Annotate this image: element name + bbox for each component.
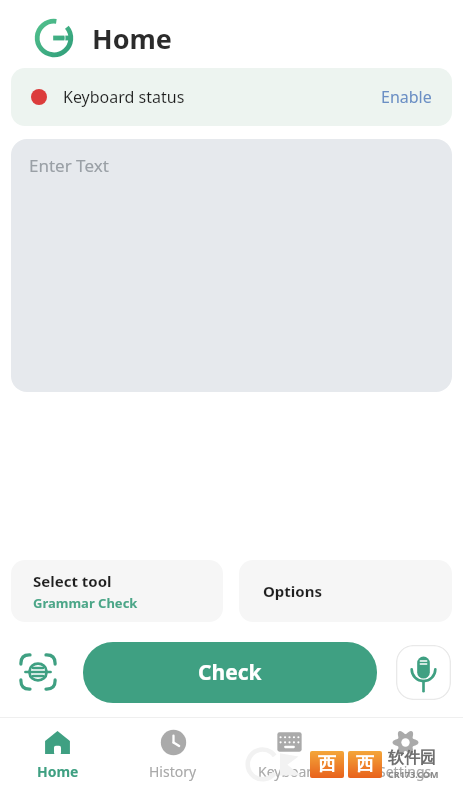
staticText: Settings — [378, 762, 432, 781]
staticText: Home — [37, 762, 79, 781]
button[interactable]: Home — [0, 718, 115, 792]
button[interactable]: Settings — [347, 718, 463, 792]
staticText: Grammar Check — [33, 594, 138, 612]
staticText: 西 — [318, 753, 336, 776]
button[interactable]: Keyboard status — [11, 68, 452, 126]
button[interactable]: Options — [239, 560, 452, 622]
staticText: Check — [198, 658, 262, 687]
staticText: History — [149, 762, 197, 781]
button[interactable]: Keyboard — [231, 718, 347, 792]
button[interactable]: Enter Text — [11, 139, 452, 392]
button[interactable]: Check — [83, 642, 377, 703]
button[interactable]: History — [115, 718, 231, 792]
staticText: Options — [263, 581, 322, 601]
button[interactable]: Scan text — [12, 646, 64, 698]
staticText: Keyboard — [258, 762, 321, 781]
staticText: 软件园 — [388, 748, 436, 768]
button[interactable]: Select tool — [11, 560, 223, 622]
staticText: Home — [92, 20, 172, 57]
staticText: Keyboard status — [63, 86, 185, 108]
staticText: Enter Text — [29, 154, 109, 177]
staticText: CR173.COM — [388, 768, 439, 780]
button[interactable]: Voice input — [396, 645, 451, 700]
staticText: 西 — [356, 753, 374, 776]
staticText: Select tool — [33, 571, 112, 591]
staticText: Enable — [381, 86, 432, 108]
